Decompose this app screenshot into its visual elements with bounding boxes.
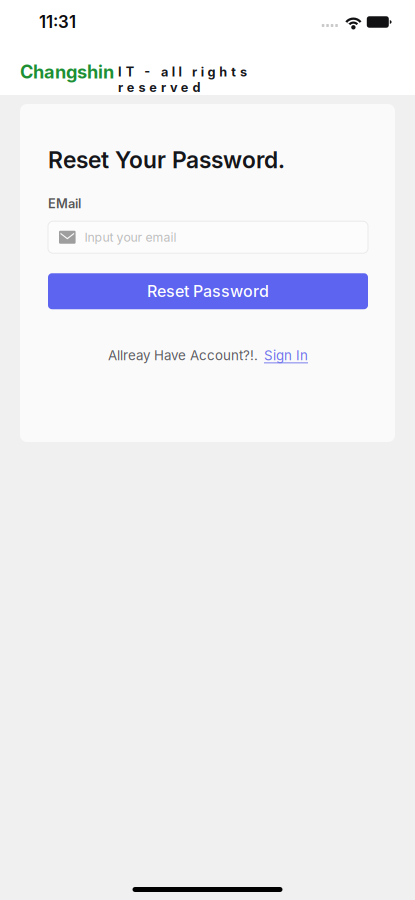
button[interactable]: Sign In: [258, 347, 308, 363]
staticText: IT - all rights reserved: [118, 64, 340, 80]
staticText: Reset Password: [147, 282, 269, 301]
staticText: Sign In: [264, 347, 308, 363]
staticText: 11:31: [39, 12, 76, 32]
staticText: Reset Your Password.: [48, 146, 285, 174]
staticText: Allreay Have Account?!.: [108, 347, 258, 363]
staticText: Input your email: [85, 230, 177, 245]
staticText: EMail: [48, 196, 81, 211]
button[interactable]: Reset Password: [48, 273, 368, 309]
staticText: Changshin: [20, 61, 114, 83]
